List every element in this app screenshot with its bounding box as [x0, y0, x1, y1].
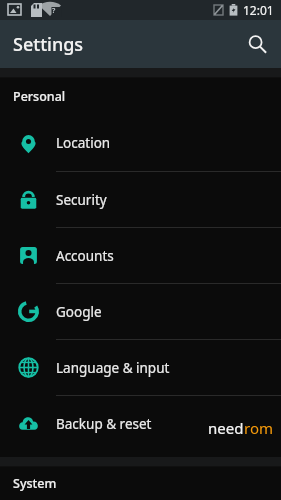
- button[interactable]: Language & input: [0, 340, 281, 395]
- staticText: need: [208, 418, 244, 438]
- staticText: rom: [244, 418, 273, 438]
- staticText: Google: [56, 303, 102, 321]
- staticText: Language & input: [56, 359, 170, 377]
- staticText: Security: [56, 191, 107, 209]
- staticText: Settings: [13, 32, 84, 57]
- staticText: Backup & reset: [56, 415, 152, 433]
- button[interactable]: Accounts: [0, 228, 281, 283]
- button[interactable]: Google: [0, 284, 281, 339]
- staticText: System: [13, 475, 57, 492]
- button[interactable]: Backup & reset: [0, 396, 281, 451]
- staticText: ?: [52, 6, 56, 16]
- staticText: Location: [56, 134, 111, 152]
- button[interactable]: Location: [0, 115, 281, 171]
- button[interactable]: Security: [0, 172, 281, 227]
- staticText: Accounts: [56, 247, 114, 265]
- staticText: Personal: [13, 88, 66, 105]
- button[interactable]: Search: [233, 20, 281, 68]
- staticText: 12:01: [243, 2, 274, 18]
